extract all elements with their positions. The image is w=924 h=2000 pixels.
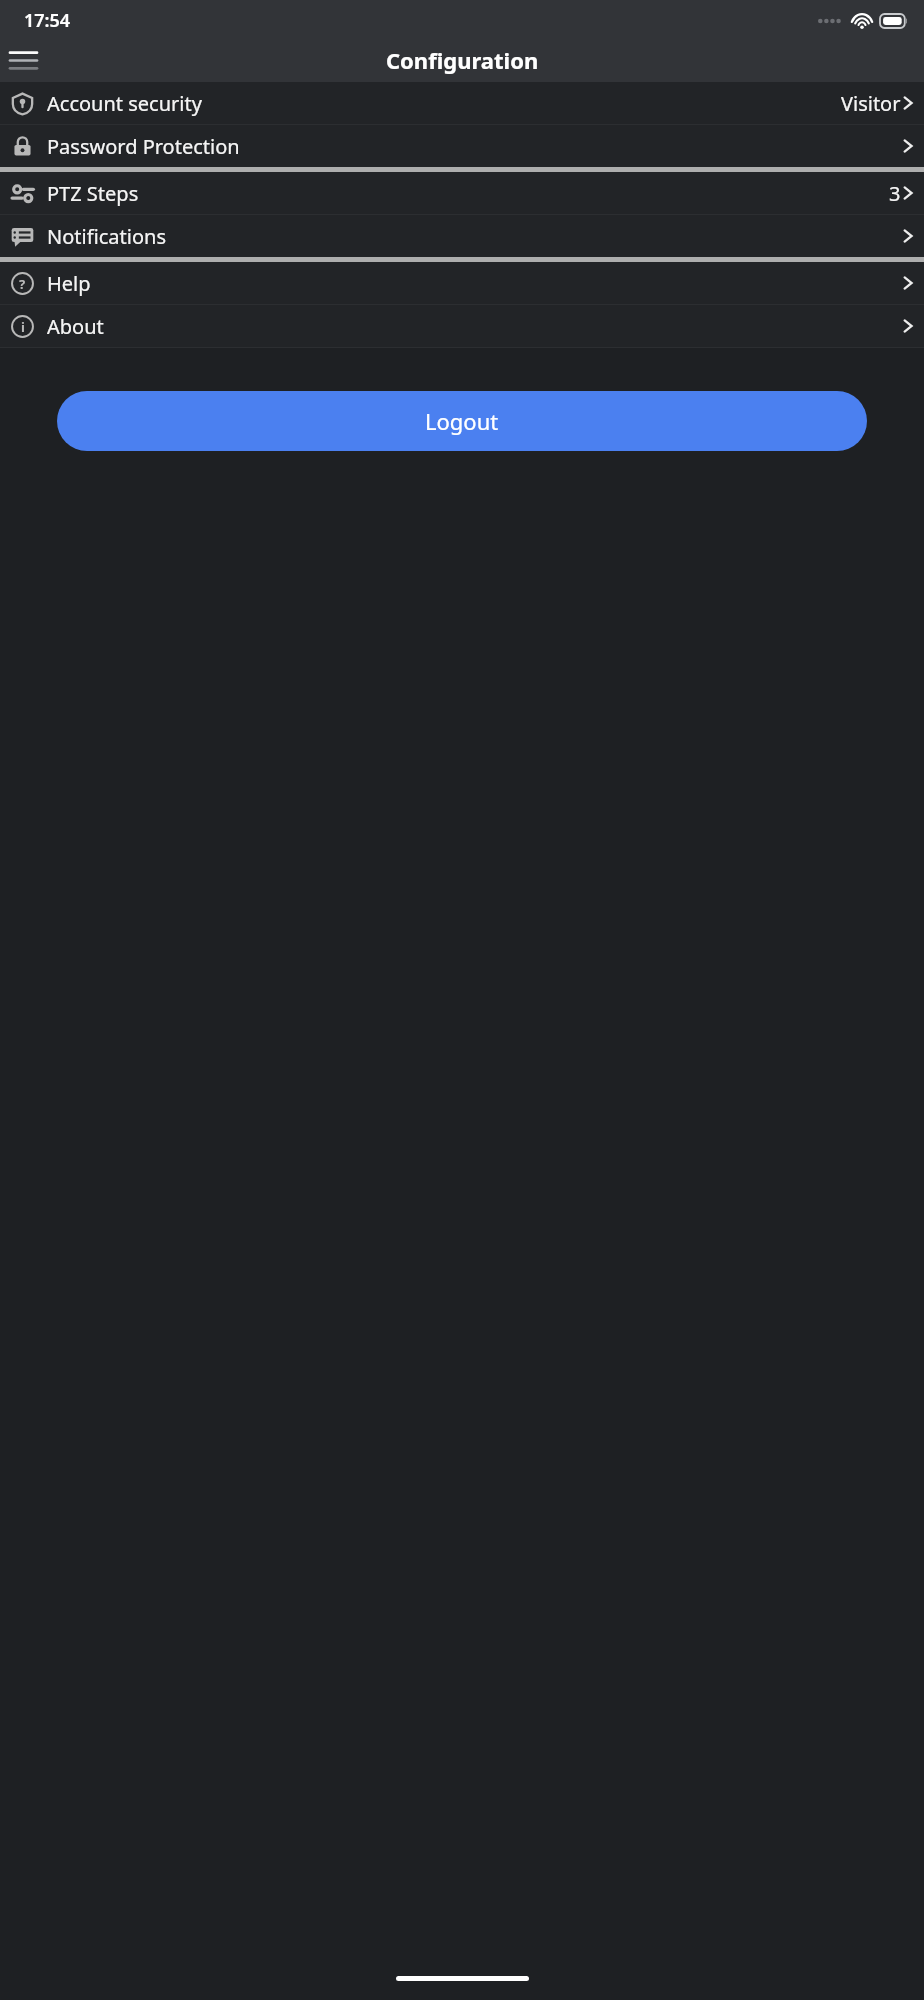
button[interactable]: Account security (0, 82, 924, 124)
staticText: 3 (889, 180, 901, 207)
staticText: 17:54 (24, 8, 71, 33)
button[interactable]: i (0, 305, 924, 347)
button[interactable]: PTZ Steps (0, 172, 924, 214)
staticText: ? (19, 275, 26, 293)
staticText: Configuration (386, 45, 539, 75)
button[interactable]: Logout (57, 391, 867, 451)
button[interactable]: Password Protection (0, 125, 924, 167)
staticText: Visitor (841, 90, 901, 117)
staticText: Help (47, 270, 91, 297)
staticText: Password Protection (47, 133, 240, 160)
staticText: About (47, 313, 104, 340)
staticText: i (21, 318, 25, 336)
staticText: Account security (47, 90, 202, 117)
button[interactable]: ? (0, 262, 924, 304)
staticText: Notifications (47, 223, 166, 250)
staticText: Logout (425, 406, 499, 436)
button[interactable]: Open navigation menu (3, 40, 43, 80)
button[interactable]: Notifications (0, 215, 924, 257)
staticText: PTZ Steps (47, 180, 139, 207)
